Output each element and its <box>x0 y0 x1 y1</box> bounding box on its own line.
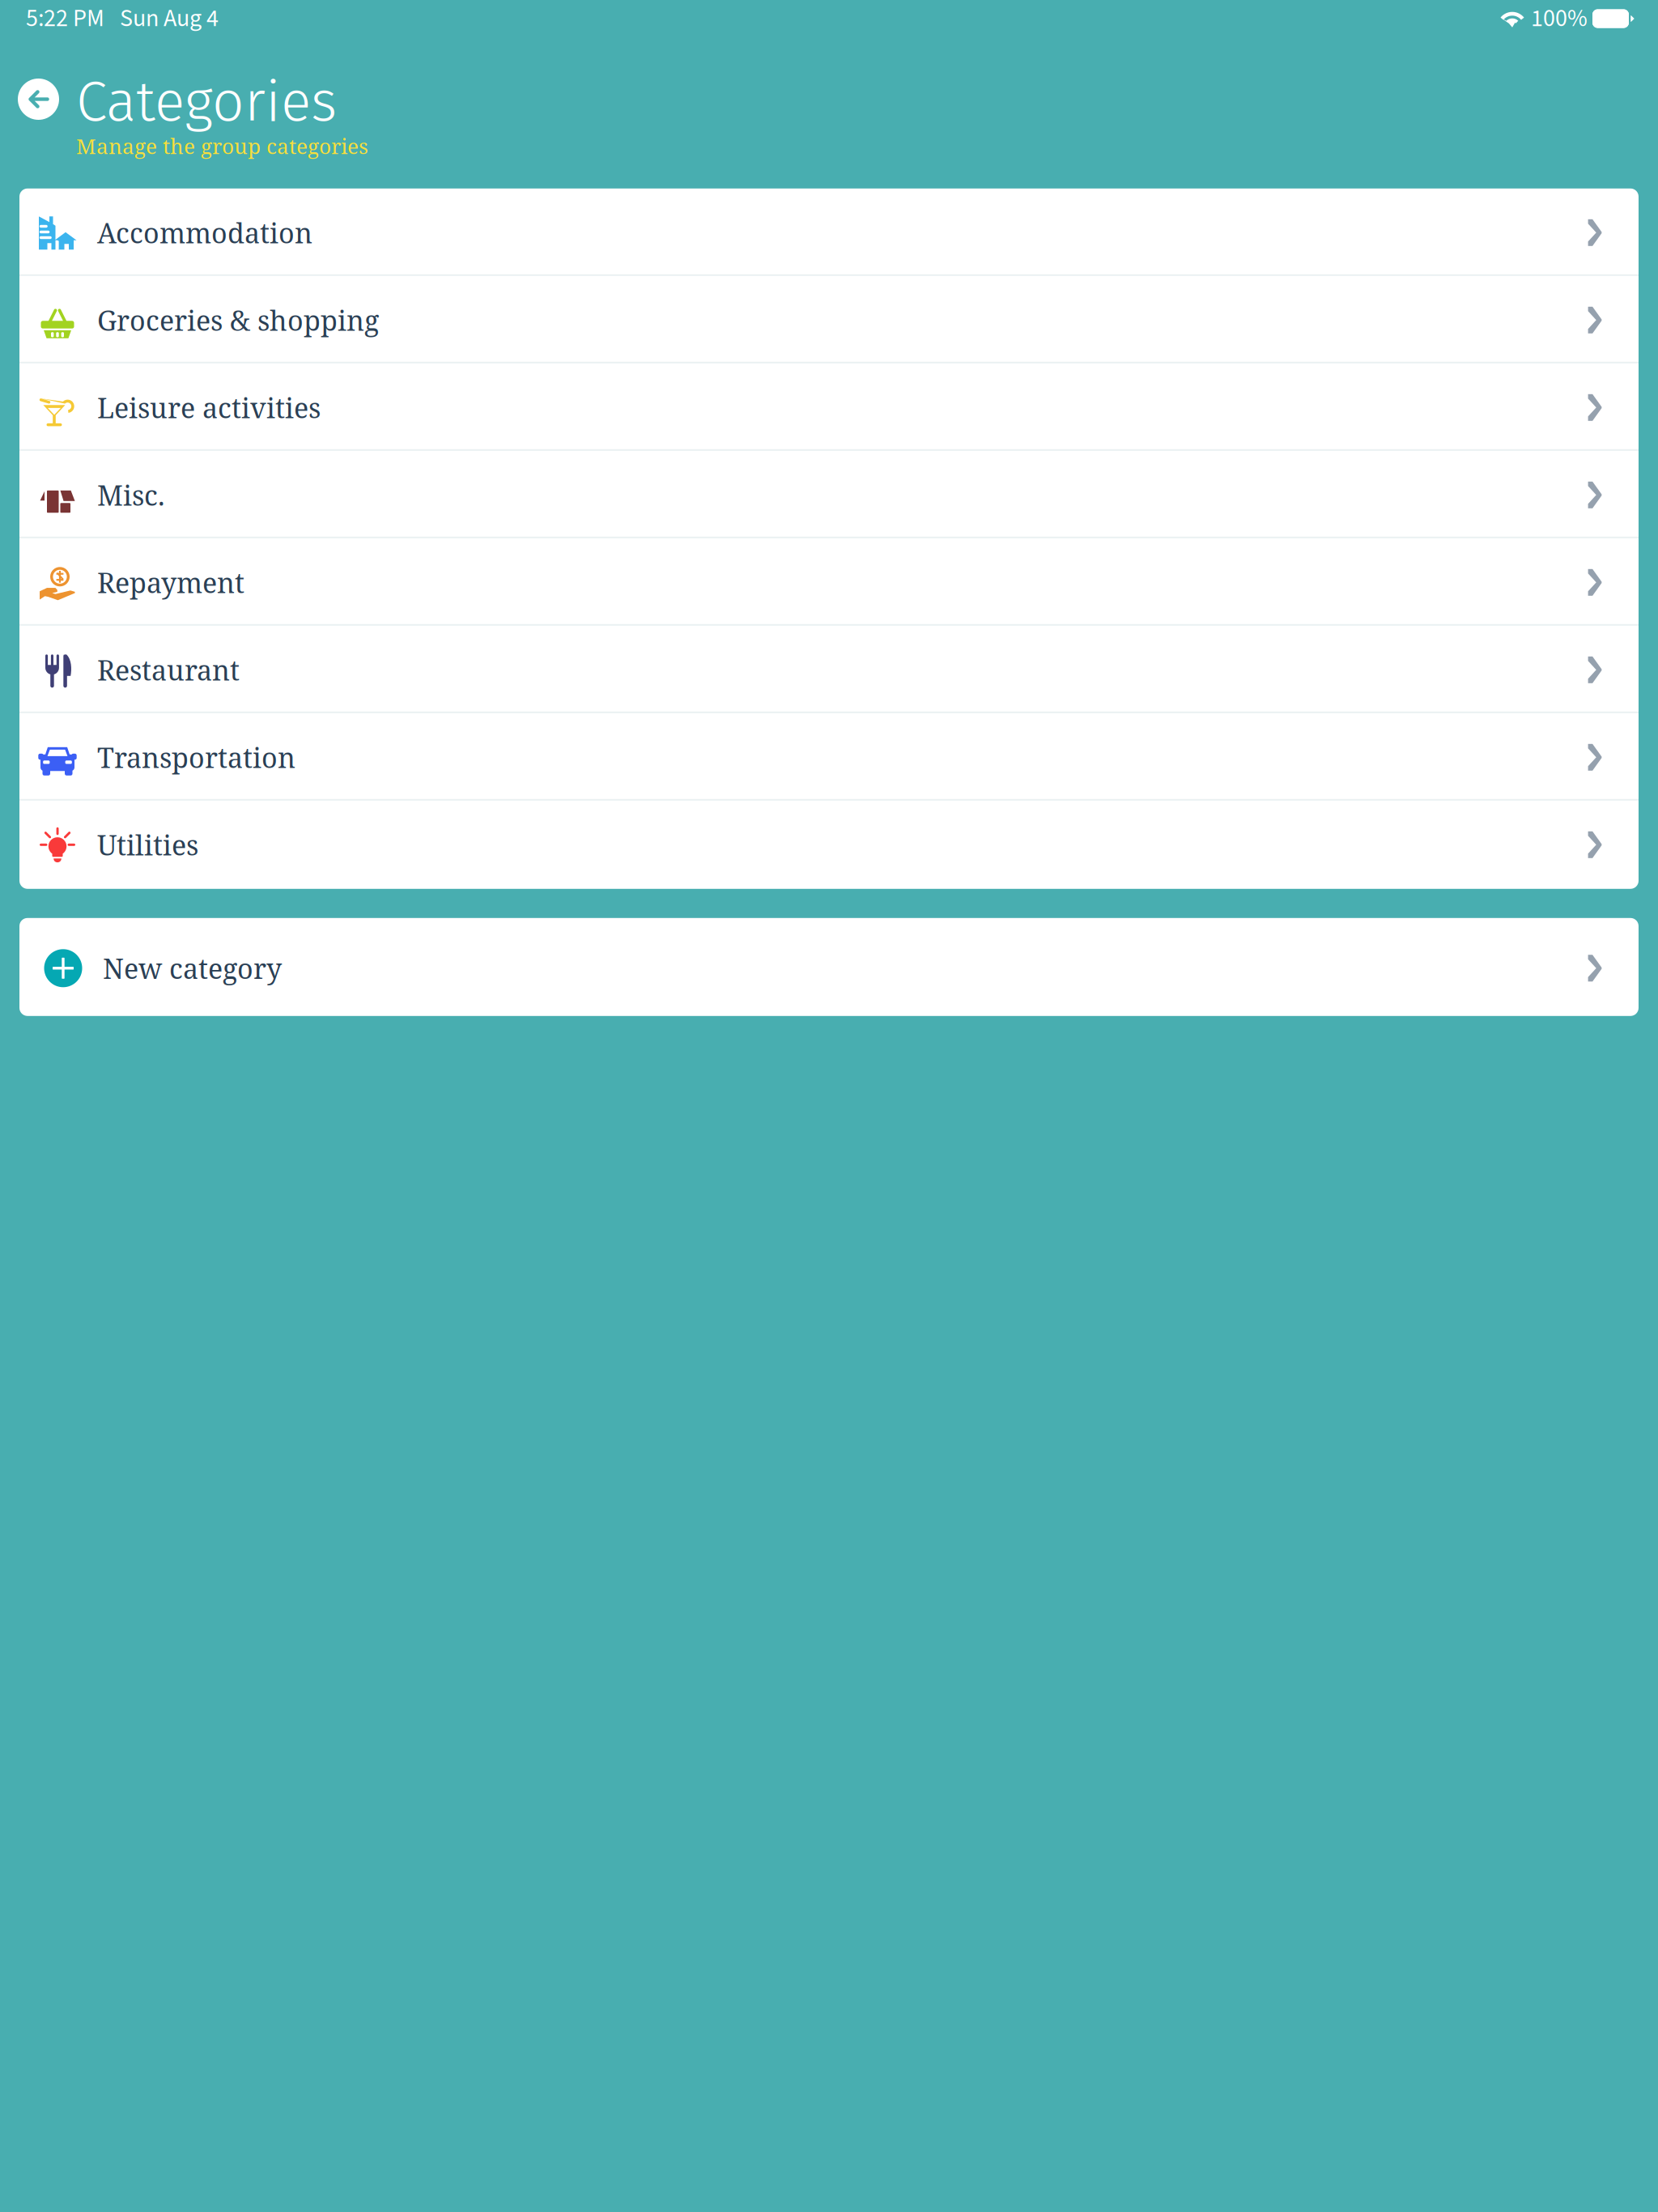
button[interactable]: Repayment <box>19 538 1639 624</box>
staticText: Transportation <box>97 738 295 776</box>
staticText: Leisure activities <box>97 389 321 426</box>
button[interactable]: Back <box>18 79 59 120</box>
staticText: 100% <box>1531 1 1588 36</box>
staticText: New category <box>103 949 282 987</box>
button[interactable]: Utilities <box>19 801 1639 886</box>
staticText: Sun Aug 4 <box>120 1 219 36</box>
button[interactable]: Transportation <box>19 713 1639 799</box>
button[interactable]: Restaurant <box>19 626 1639 712</box>
staticText: Repayment <box>97 564 244 601</box>
staticText: Manage the group categories <box>76 131 368 160</box>
button[interactable]: New category <box>19 918 1639 1016</box>
button[interactable]: Misc. <box>19 451 1639 537</box>
button[interactable]: Leisure activities <box>19 363 1639 449</box>
staticText: Misc. <box>97 476 165 514</box>
staticText: Restaurant <box>97 651 240 689</box>
staticText: Utilities <box>97 826 198 863</box>
staticText: Categories <box>76 68 337 135</box>
staticText: Accommodation <box>97 214 312 251</box>
staticText: 5:22 PM <box>26 1 104 36</box>
button[interactable]: Groceries & shopping <box>19 276 1639 362</box>
button[interactable]: Accommodation <box>19 188 1639 274</box>
staticText: Groceries & shopping <box>97 301 379 339</box>
